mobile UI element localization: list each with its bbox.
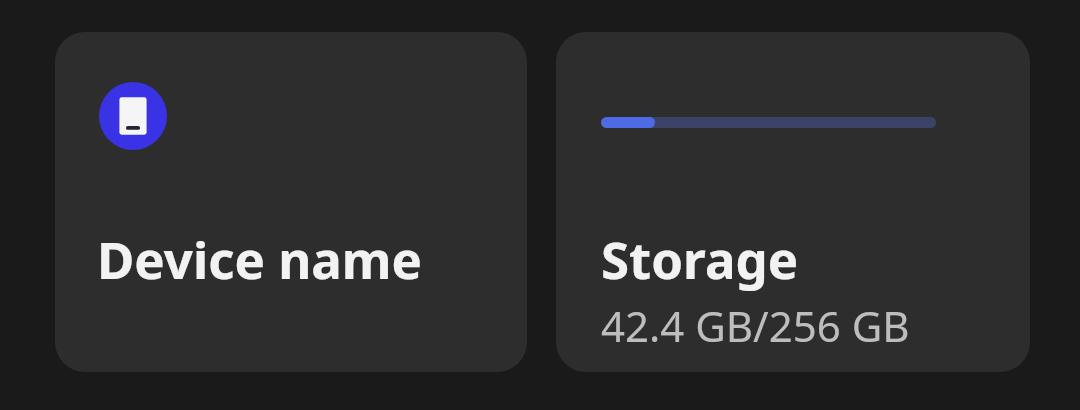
button[interactable]: Device [55, 32, 527, 372]
staticText: 42.4 GB/256 GB [601, 297, 910, 354]
staticText: Device name [97, 224, 423, 293]
button[interactable]: Storage [556, 32, 1030, 372]
other: Device [99, 82, 167, 150]
staticText: Storage [601, 224, 799, 293]
